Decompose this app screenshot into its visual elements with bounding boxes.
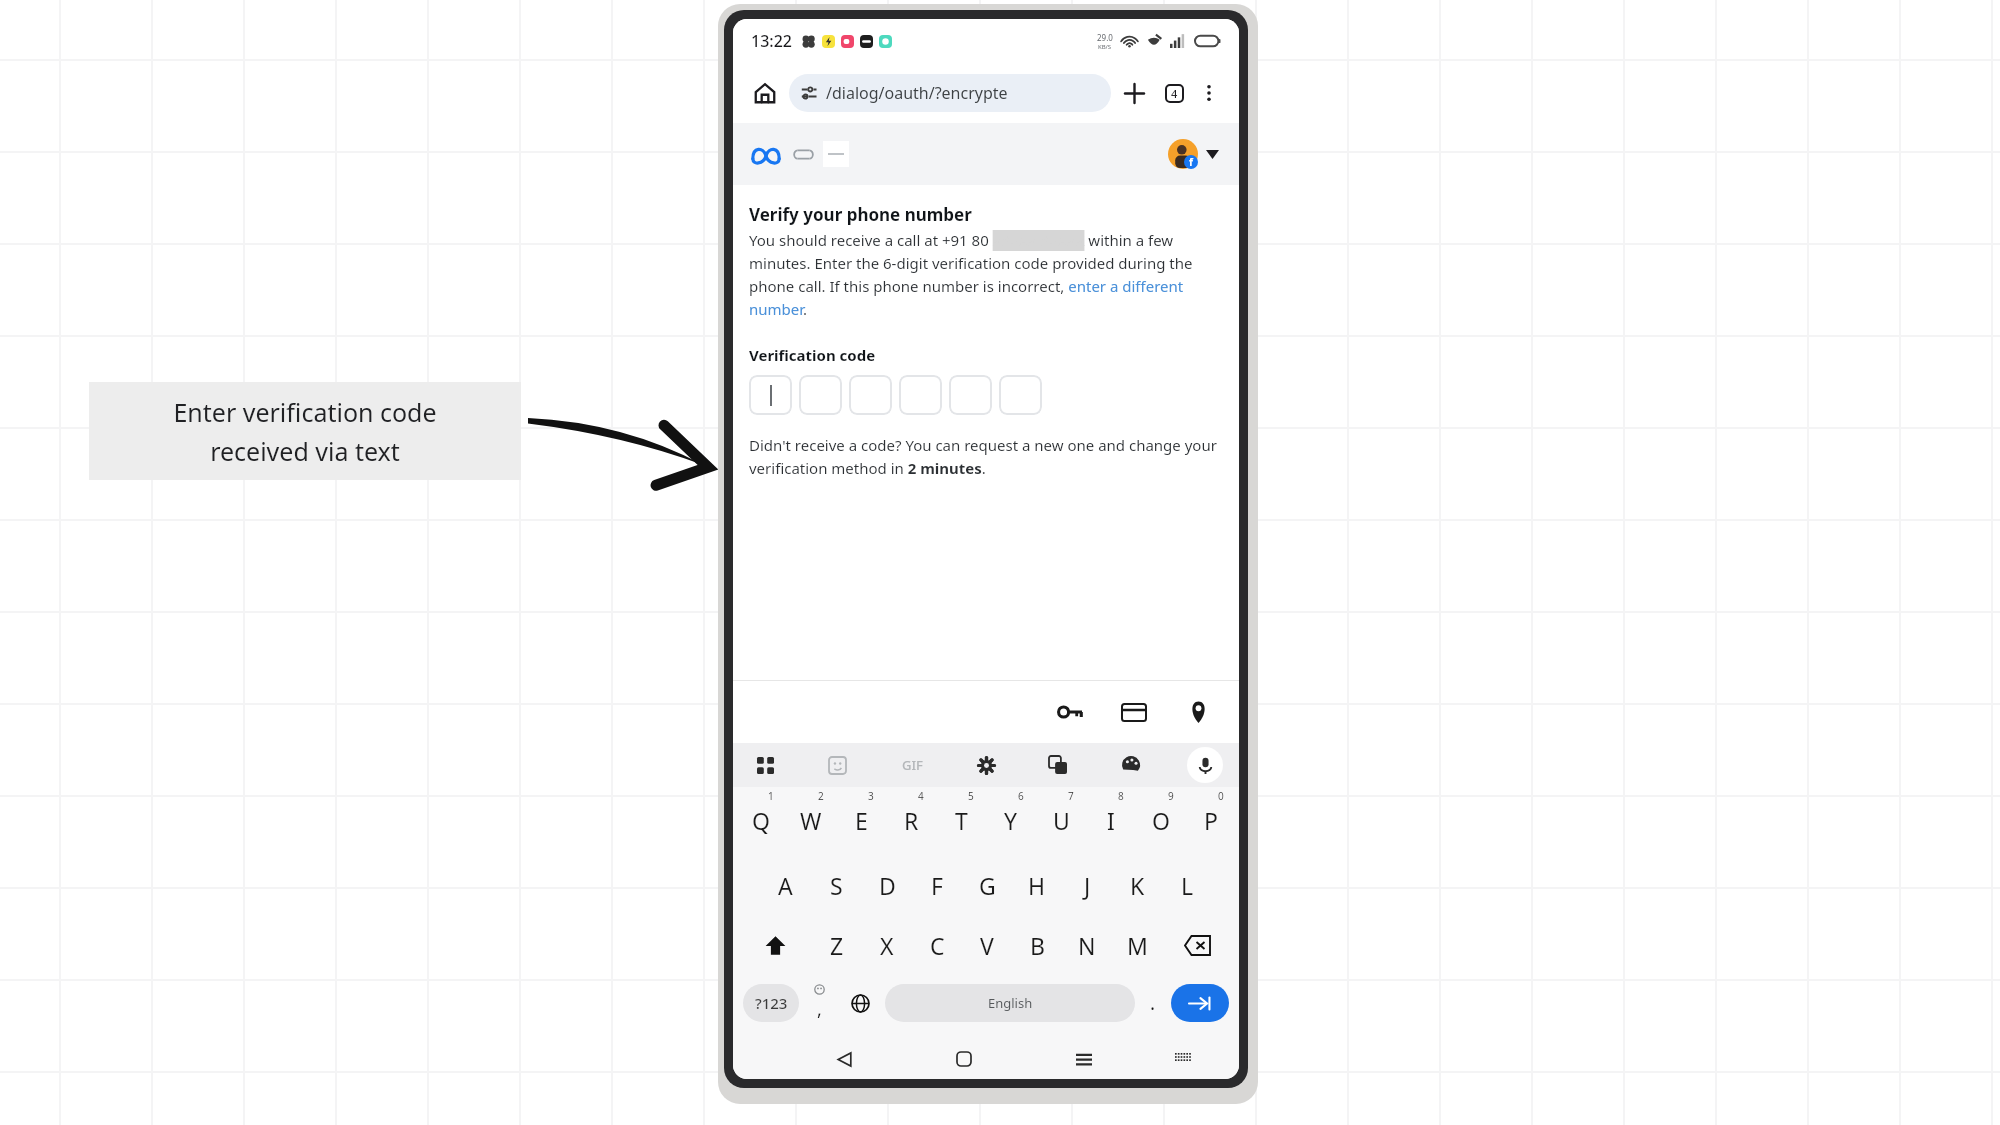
staticText: 6 xyxy=(1018,789,1024,803)
button[interactable]: I xyxy=(1086,793,1136,847)
staticText: W xyxy=(800,805,822,836)
button[interactable]: Title placeholder xyxy=(823,141,849,167)
staticText: E xyxy=(855,805,868,836)
button[interactable]: Code digit 2 xyxy=(799,375,842,415)
button[interactable]: Z xyxy=(811,923,862,967)
button[interactable]: Keyboard settings xyxy=(970,749,1002,781)
button[interactable]: P xyxy=(1186,793,1236,847)
button[interactable]: J xyxy=(1062,863,1112,907)
button[interactable]: Refresh xyxy=(789,140,817,168)
button[interactable]: C xyxy=(912,923,962,967)
button[interactable]: f xyxy=(1164,135,1223,173)
staticText: Verification code xyxy=(749,345,876,365)
button[interactable]: More options xyxy=(1193,77,1225,109)
button[interactable]: R xyxy=(886,793,936,847)
button[interactable]: Meta xyxy=(749,137,783,171)
staticText: KB/S xyxy=(1098,43,1112,51)
staticText: 3 xyxy=(868,789,874,803)
button[interactable]: Code digit 1 xyxy=(749,375,792,415)
button[interactable]: Next xyxy=(1171,984,1229,1022)
button[interactable]: D xyxy=(862,863,912,907)
button[interactable]: Tabs: 4 xyxy=(1157,76,1191,110)
button[interactable]: M xyxy=(1112,923,1162,967)
staticText: K xyxy=(1130,870,1145,901)
staticText: English xyxy=(988,994,1033,1012)
staticText: L xyxy=(1181,870,1194,901)
button[interactable]: Passwords xyxy=(1049,691,1091,733)
button[interactable]: K xyxy=(1112,863,1162,907)
staticText: M xyxy=(1127,930,1148,961)
button[interactable]: L xyxy=(1162,863,1212,907)
button[interactable]: B xyxy=(1012,923,1062,967)
button[interactable]: Code digit 3 xyxy=(849,375,892,415)
button[interactable]: Translate xyxy=(1042,749,1074,781)
button[interactable]: Code digit 5 xyxy=(949,375,992,415)
button[interactable]: Hide keyboard xyxy=(1166,1042,1200,1076)
button[interactable]: Backspace xyxy=(1162,923,1233,967)
button[interactable]: N xyxy=(1062,923,1112,967)
staticText: S xyxy=(830,870,843,901)
button[interactable]: Home xyxy=(947,1042,981,1076)
button[interactable]: ?123 xyxy=(743,984,799,1022)
button[interactable]: Period xyxy=(1135,981,1171,1025)
staticText: 7 xyxy=(1068,789,1074,803)
button[interactable]: Toolbar menu xyxy=(749,749,781,781)
staticText: I xyxy=(1107,805,1115,836)
button[interactable]: Code digit 6 xyxy=(999,375,1042,415)
staticText: You should receive a call at +91 80 XXXX… xyxy=(749,230,1223,319)
button[interactable]: /dialog/oauth/?encrypte xyxy=(789,74,1111,112)
staticText: f xyxy=(1189,155,1193,169)
button[interactable]: Y xyxy=(986,793,1036,847)
button[interactable]: T xyxy=(936,793,986,847)
staticText: C xyxy=(930,930,945,961)
button[interactable]: A xyxy=(760,863,811,907)
button[interactable]: H xyxy=(1012,863,1062,907)
button[interactable]: V xyxy=(962,923,1012,967)
button[interactable]: G xyxy=(962,863,1012,907)
button[interactable]: Q xyxy=(736,793,786,847)
staticText: G xyxy=(979,870,996,901)
button[interactable]: Change language xyxy=(839,981,881,1025)
staticText: GIF xyxy=(902,756,923,774)
staticText: U xyxy=(1053,805,1070,836)
button[interactable]: Emoji and comma xyxy=(799,981,839,1025)
button[interactable]: X xyxy=(862,923,912,967)
staticText: . xyxy=(1150,990,1156,1016)
staticText: 4 xyxy=(1171,86,1178,101)
button[interactable]: O xyxy=(1136,793,1186,847)
staticText: 13:22 xyxy=(751,30,792,52)
button[interactable]: Code digit 4 xyxy=(899,375,942,415)
staticText: V xyxy=(980,930,994,961)
button[interactable]: Themes xyxy=(1115,749,1147,781)
staticText: X xyxy=(880,930,894,961)
staticText: D xyxy=(879,870,896,901)
staticText: Y xyxy=(1004,805,1018,836)
button[interactable]: Recent apps xyxy=(1067,1042,1101,1076)
button[interactable]: GIF xyxy=(894,747,930,783)
button[interactable]: E xyxy=(836,793,886,847)
button[interactable]: W xyxy=(786,793,836,847)
button[interactable]: Addresses xyxy=(1177,691,1219,733)
staticText: 1 xyxy=(768,789,774,803)
staticText: F xyxy=(931,870,943,901)
staticText: Enter verification code received via tex… xyxy=(173,395,437,468)
button[interactable]: S xyxy=(811,863,862,907)
button[interactable]: Home xyxy=(747,75,783,111)
button[interactable]: Voice input xyxy=(1187,747,1223,783)
button[interactable]: U xyxy=(1036,793,1086,847)
staticText: 9 xyxy=(1168,789,1174,803)
staticText: , xyxy=(817,997,822,1022)
staticText: N xyxy=(1078,930,1096,961)
staticText: Didn't receive a code? You can request a… xyxy=(749,435,1223,478)
staticText: O xyxy=(1152,805,1170,836)
staticText: ?123 xyxy=(755,993,788,1013)
button[interactable]: Shift xyxy=(739,923,811,967)
button[interactable]: Payment methods xyxy=(1113,691,1155,733)
staticText: Q xyxy=(752,805,770,836)
button[interactable]: New tab xyxy=(1117,76,1151,110)
button[interactable]: Back xyxy=(827,1042,861,1076)
button[interactable]: F xyxy=(912,863,962,907)
staticText: 2 xyxy=(818,789,824,803)
button[interactable]: English xyxy=(885,984,1135,1022)
button[interactable]: Stickers xyxy=(821,749,853,781)
